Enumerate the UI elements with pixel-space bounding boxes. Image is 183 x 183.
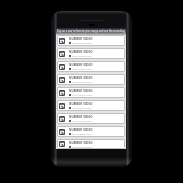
button[interactable]: NUMBER VIDEO — [57, 74, 125, 85]
staticText: Tap on a row to format your range and se… — [57, 29, 125, 32]
staticText: NUMBER VIDEO — [69, 76, 93, 80]
button[interactable]: NUMBER VIDEO — [57, 139, 125, 149]
staticText: subscribed video — [72, 54, 92, 57]
staticText: NUMBER VIDEO — [69, 141, 93, 145]
staticText: subscribed video — [72, 41, 92, 44]
staticText: subscribed video — [72, 145, 92, 148]
staticText: subscribed video — [72, 80, 92, 83]
button[interactable]: NUMBER VIDEO — [57, 100, 125, 111]
staticText: NUMBER VIDEO — [69, 115, 93, 119]
staticText: subscribed video — [72, 106, 92, 109]
staticText: NUMBER VIDEO — [69, 37, 93, 41]
button[interactable]: NUMBER VIDEO — [57, 48, 125, 59]
button[interactable]: NUMBER VIDEO — [57, 113, 125, 124]
button[interactable]: Tap on a row to format your range and se… — [56, 28, 126, 35]
staticText: NUMBER VIDEO — [69, 128, 93, 132]
staticText: NUMBER VIDEO — [69, 102, 93, 106]
staticText: subscribed video — [72, 67, 92, 70]
staticText: subscribed video — [72, 132, 92, 135]
staticText: NUMBER VIDEO — [69, 63, 93, 67]
button[interactable]: NUMBER VIDEO — [57, 126, 125, 137]
button[interactable]: NUMBER VIDEO — [57, 61, 125, 72]
staticText: subscribed video — [72, 93, 92, 96]
staticText: NUMBER VIDEO — [69, 89, 93, 93]
staticText: NUMBER VIDEO — [69, 50, 93, 54]
button[interactable]: NUMBER VIDEO — [57, 35, 125, 46]
button[interactable]: NUMBER VIDEO — [57, 87, 125, 98]
staticText: subscribed video — [72, 119, 92, 122]
